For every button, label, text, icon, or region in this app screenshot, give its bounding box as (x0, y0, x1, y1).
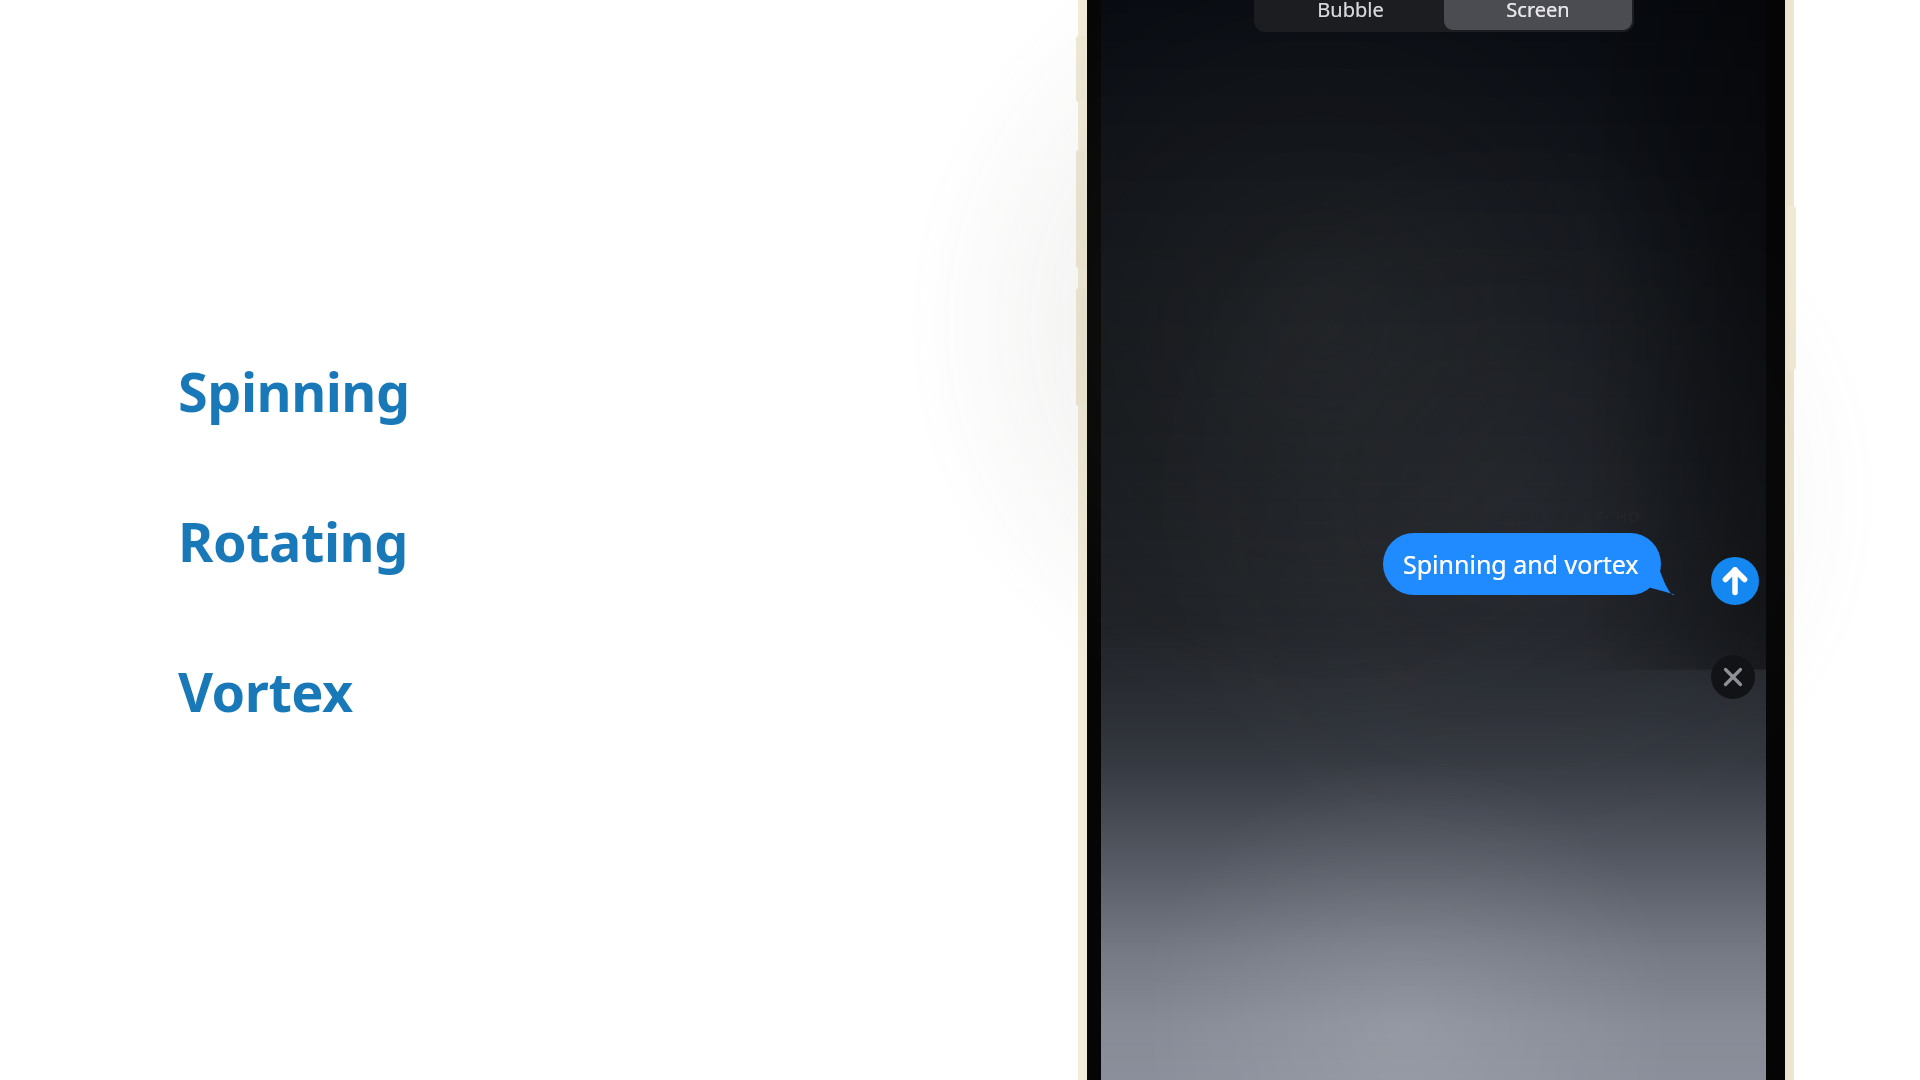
staticText: Spinning and vortex (1403, 547, 1639, 581)
button[interactable]: Vortex (178, 652, 353, 730)
button[interactable]: Spinning and vortex (1383, 533, 1673, 595)
staticText: Spinning (178, 354, 410, 428)
button[interactable]: Spinning (178, 352, 410, 430)
button[interactable]: Send (1711, 557, 1759, 605)
button[interactable]: Screen (1444, 0, 1632, 30)
button[interactable]: Close (1711, 655, 1755, 699)
staticText: Screen (1506, 0, 1570, 23)
staticText: Bubble (1317, 0, 1384, 23)
staticText: Rotating (178, 504, 408, 578)
staticText: Vortex (178, 654, 353, 728)
button[interactable]: Rotating (178, 502, 408, 580)
button[interactable]: Bubble (1256, 0, 1444, 30)
